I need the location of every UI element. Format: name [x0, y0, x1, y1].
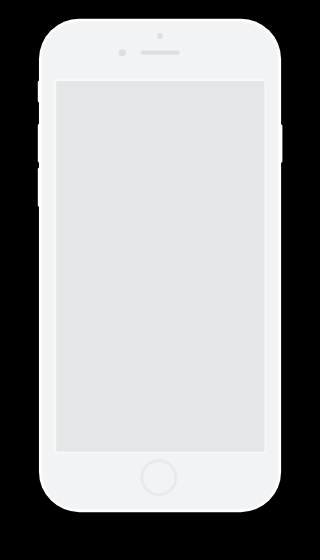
button[interactable]: Home button: [140, 459, 177, 496]
